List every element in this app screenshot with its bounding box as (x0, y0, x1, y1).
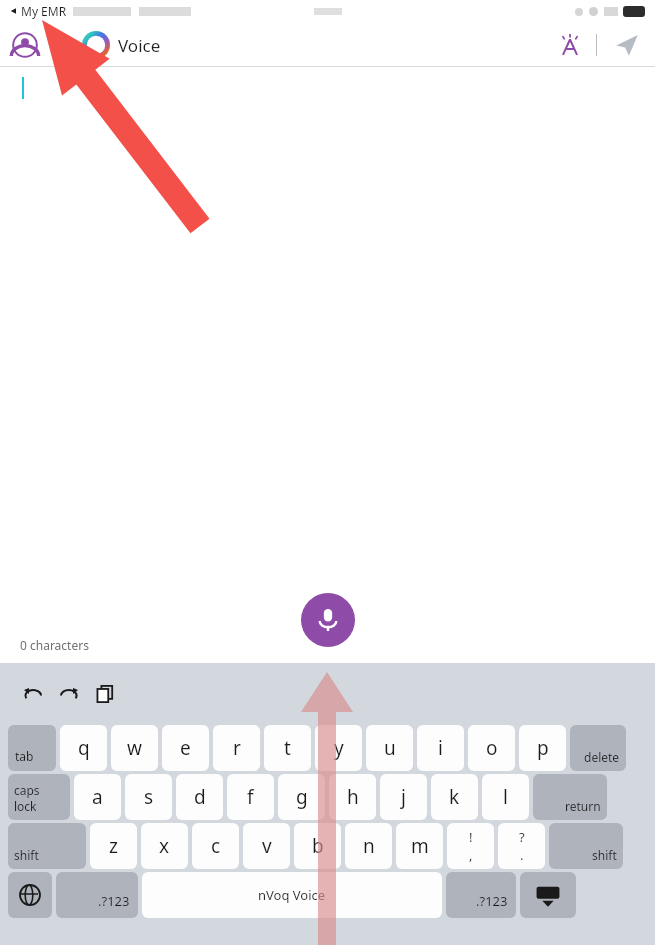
staticText: . (520, 846, 524, 864)
button[interactable]: x (141, 823, 188, 869)
button[interactable]: e (162, 725, 209, 771)
staticText: s (144, 784, 154, 810)
staticText: b (312, 833, 324, 859)
button[interactable]: return (533, 774, 607, 820)
staticText: caps lock (14, 782, 64, 814)
button[interactable] (8, 872, 52, 918)
staticText: r (233, 735, 241, 761)
staticText: tab (15, 748, 34, 764)
button[interactable]: shift (8, 823, 86, 869)
button[interactable]: Send (611, 29, 643, 61)
button[interactable]: delete (570, 725, 626, 771)
button[interactable]: s (125, 774, 172, 820)
button[interactable]: Undo (18, 679, 48, 709)
button[interactable]: r (213, 725, 260, 771)
button[interactable]: nVoq Voice (142, 872, 442, 918)
staticText: w (127, 735, 142, 761)
staticText: return (565, 798, 601, 814)
staticText: j (401, 784, 406, 810)
staticText: m (411, 833, 429, 859)
button[interactable]: f (227, 774, 274, 820)
button[interactable]: a (74, 774, 121, 820)
button[interactable]: .?123 (446, 872, 516, 918)
staticText: a (92, 784, 103, 810)
button[interactable]: tab (8, 725, 56, 771)
staticText: Voice (118, 34, 161, 57)
button[interactable]: y (315, 725, 362, 771)
button[interactable]: g (278, 774, 325, 820)
button[interactable]: i (417, 725, 464, 771)
staticText: f (247, 784, 254, 810)
staticText: delete (584, 749, 620, 765)
button[interactable]: j (380, 774, 427, 820)
staticText: ? (519, 828, 525, 846)
staticText: ! (469, 828, 473, 846)
staticText: l (503, 784, 508, 810)
staticText: .?123 (476, 892, 508, 910)
staticText: t (284, 735, 291, 761)
button[interactable]: m (396, 823, 443, 869)
button[interactable]: v (243, 823, 290, 869)
staticText: d (194, 784, 206, 810)
button[interactable]: caps lock (8, 774, 70, 820)
staticText: x (159, 833, 170, 859)
button[interactable]: k (431, 774, 478, 820)
staticText: My EMR (21, 3, 67, 19)
staticText: y (334, 735, 344, 761)
button[interactable]: shift (549, 823, 623, 869)
staticText: i (438, 735, 443, 761)
staticText: v (262, 833, 272, 859)
button[interactable]: n (345, 823, 392, 869)
button[interactable]: Paste (90, 679, 120, 709)
staticText: h (347, 784, 359, 810)
button[interactable]: c (192, 823, 239, 869)
button[interactable]: ? (498, 823, 545, 869)
staticText: q (78, 735, 90, 761)
staticText: p (537, 735, 549, 761)
staticText: g (296, 784, 308, 810)
button[interactable]: .?123 (56, 872, 138, 918)
button[interactable]: AI assist (554, 29, 586, 61)
button[interactable]: z (90, 823, 137, 869)
staticText: z (109, 833, 118, 859)
button[interactable]: w (111, 725, 158, 771)
staticText: u (384, 735, 396, 761)
staticText: , (469, 846, 473, 864)
button[interactable]: Record (301, 593, 355, 647)
staticText: .?123 (98, 892, 130, 910)
button[interactable]: d (176, 774, 223, 820)
button[interactable]: u (366, 725, 413, 771)
button[interactable]: o (468, 725, 515, 771)
staticText: shift (14, 847, 39, 863)
button[interactable]: b (294, 823, 341, 869)
staticText: o (486, 735, 498, 761)
staticText: 0 characters (20, 637, 89, 653)
button[interactable]: h (329, 774, 376, 820)
button[interactable] (520, 872, 576, 918)
staticText: c (211, 833, 221, 859)
button[interactable]: Redo (54, 679, 84, 709)
staticText: shift (592, 847, 617, 863)
staticText: k (449, 784, 460, 810)
button[interactable]: Account (10, 30, 40, 60)
button[interactable]: l (482, 774, 529, 820)
staticText: e (180, 735, 191, 761)
button[interactable]: t (264, 725, 311, 771)
staticText: n (363, 833, 375, 859)
button[interactable]: p (519, 725, 566, 771)
button[interactable]: ! (447, 823, 494, 869)
staticText: nVoq Voice (258, 886, 326, 904)
button[interactable]: q (60, 725, 107, 771)
